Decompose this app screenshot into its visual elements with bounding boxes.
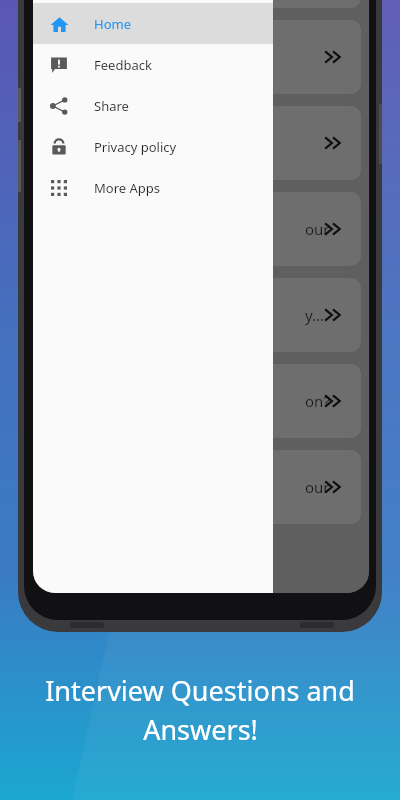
- staticText: Interview Questions and: [45, 672, 355, 709]
- staticText: Share: [94, 97, 129, 115]
- staticText: Feedback: [94, 56, 152, 74]
- button[interactable]: [41, 106, 361, 180]
- staticText: our: [305, 477, 330, 497]
- staticText: on?: [305, 391, 330, 411]
- button[interactable]: [41, 0, 361, 8]
- button[interactable]: Feedback: [33, 44, 273, 85]
- button[interactable]: y…: [41, 278, 361, 352]
- button[interactable]: Share: [33, 85, 273, 126]
- staticText: Answers!: [143, 711, 258, 748]
- staticText: y…: [305, 305, 324, 325]
- staticText: our: [305, 219, 330, 239]
- button[interactable]: More Apps: [33, 167, 273, 208]
- button[interactable]: Home: [33, 3, 273, 44]
- button[interactable]: our: [41, 192, 361, 266]
- button[interactable]: our: [41, 450, 361, 524]
- staticText: Home: [94, 15, 131, 33]
- staticText: More Apps: [94, 179, 161, 197]
- button[interactable]: [41, 20, 361, 94]
- staticText: Privacy policy: [94, 138, 177, 156]
- button[interactable]: Privacy policy: [33, 126, 273, 167]
- button[interactable]: on?: [41, 364, 361, 438]
